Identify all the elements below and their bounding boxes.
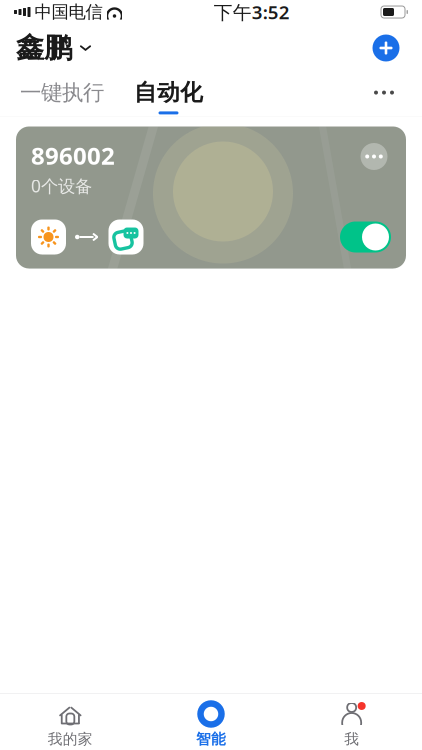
button[interactable]: 我的家 [0,697,141,750]
button[interactable]: 我 [281,697,422,750]
staticText: 鑫鹏 [16,31,72,65]
button[interactable]: 鑫鹏 [16,27,92,69]
staticText: 我 [344,730,359,748]
button[interactable]: 添加 [366,28,406,68]
button[interactable]: 896002 [16,126,406,268]
button[interactable]: 自动化 [130,74,207,114]
button[interactable]: 启用自动化 [340,221,391,252]
staticText: 896002 [31,139,115,171]
staticText: 下午3:52 [214,0,290,24]
staticText: 我的家 [48,730,93,748]
staticText: 一键执行 [20,80,104,106]
button[interactable]: 场景设置 [357,139,391,173]
staticText: 中国电信 [34,1,102,23]
button[interactable]: 智能 [141,697,281,750]
button[interactable]: 一键执行 [16,74,108,114]
staticText: 自动化 [134,79,203,106]
button[interactable]: 更多 [362,74,406,112]
staticText: 智能 [196,730,226,748]
staticText: 0个设备 [31,174,92,197]
